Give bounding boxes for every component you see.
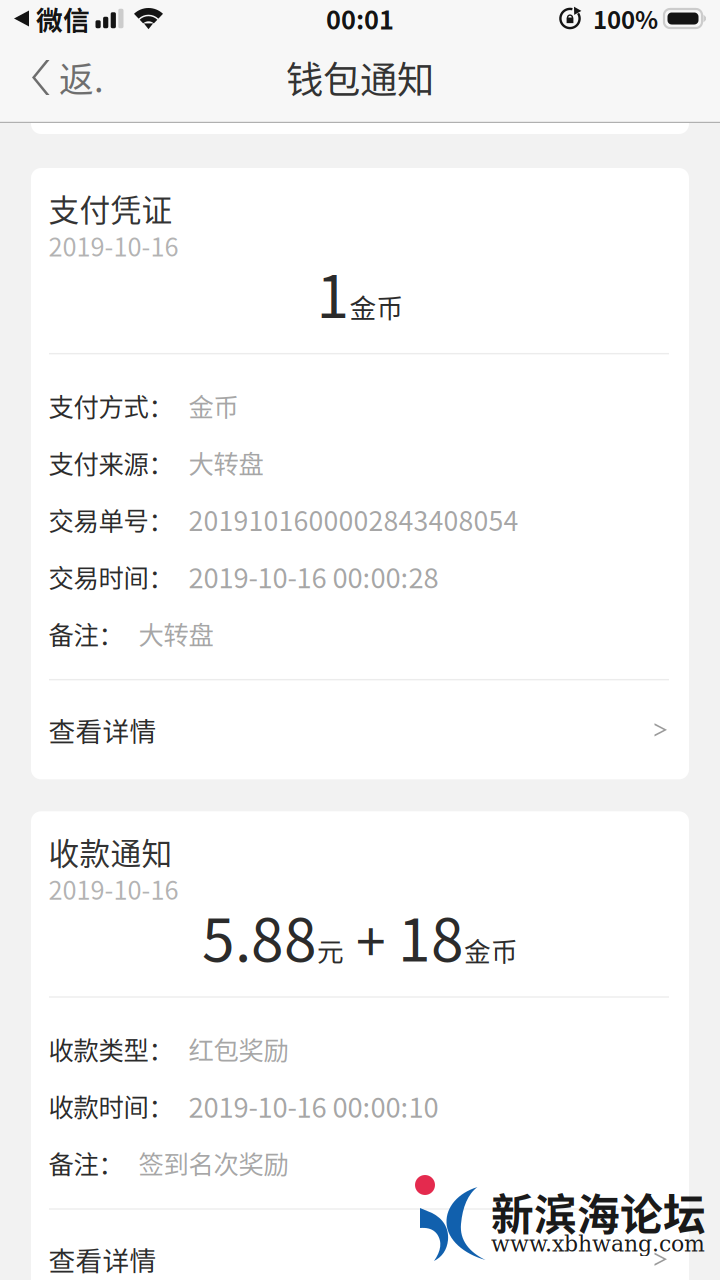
staticText: 备注：: [48, 615, 123, 652]
staticText: 收款时间：: [48, 1087, 173, 1124]
staticText: 查看详情: [48, 710, 156, 749]
staticText: 支付凭证: [48, 186, 172, 230]
staticText: 大转盘: [138, 615, 213, 652]
staticText: 元: [317, 930, 344, 969]
button[interactable]: 返.: [0, 37, 122, 118]
button[interactable]: 查看详情: [31, 1210, 689, 1280]
staticText: 2019-10-16 00:00:28: [188, 557, 438, 596]
staticText: 收款类型：: [48, 1030, 173, 1067]
staticText: 2019-10-16: [48, 870, 178, 907]
staticText: +: [344, 899, 398, 977]
staticText: 2019-10-16 00:00:10: [188, 1086, 438, 1126]
staticText: 5.88: [202, 893, 317, 978]
staticText: 支付来源：: [48, 444, 173, 481]
staticText: 备注：: [48, 1144, 123, 1181]
staticText: 大转盘: [188, 444, 263, 481]
staticText: 金币: [464, 930, 518, 969]
staticText: 18: [398, 893, 464, 978]
staticText: 2019-10-16: [48, 227, 178, 264]
staticText: 返.: [59, 52, 104, 103]
staticText: 收款通知: [48, 829, 172, 874]
staticText: 交易单号：: [48, 501, 173, 538]
staticText: 钱包通知: [286, 50, 434, 105]
staticText: 签到名次奖励: [138, 1144, 288, 1181]
staticText: 00:01: [326, 0, 394, 37]
staticText: 金币: [188, 387, 238, 424]
staticText: 支付方式：: [48, 387, 173, 424]
staticText: 100%: [593, 1, 658, 36]
staticText: 红包奖励: [188, 1030, 288, 1067]
button[interactable]: 查看详情: [31, 680, 689, 779]
staticText: www.xbhwang.com: [491, 1231, 705, 1257]
staticText: 新滨海论坛: [491, 1181, 706, 1243]
staticText: 2019101600002843408054: [188, 500, 518, 539]
staticText: 1: [316, 250, 349, 335]
staticText: 交易时间：: [48, 558, 173, 595]
staticText: 微信: [36, 0, 90, 38]
staticText: 查看详情: [48, 1240, 156, 1278]
staticText: 金币: [349, 287, 403, 326]
